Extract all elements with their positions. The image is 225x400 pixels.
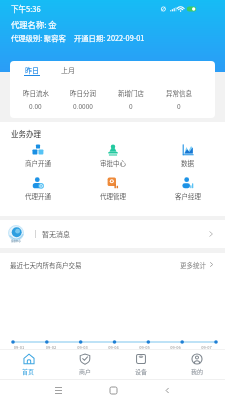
staticText: 09-03 (67, 344, 98, 350)
staticText: 0 (177, 101, 181, 110)
staticText: 09-02 (35, 344, 67, 350)
button[interactable]: 数据 (150, 144, 225, 167)
staticText: 商户 (79, 367, 92, 376)
staticText: 首页 (22, 367, 35, 376)
staticText: 开通日期: 2022-09-01 (74, 33, 145, 44)
staticText: 昨日流水 (23, 88, 49, 97)
staticText: 商户开通 (25, 158, 51, 167)
button[interactable]: 更多统计 (180, 260, 215, 269)
staticText: 客户经理 (175, 191, 201, 200)
button[interactable]: 客户经理 (150, 177, 225, 200)
button[interactable]: 首页 (0, 350, 57, 379)
button[interactable]: 审批中心 (75, 144, 150, 167)
staticText: 0.00 (29, 101, 42, 110)
staticText: 新增门店 (118, 88, 144, 97)
staticText: 上月 (61, 65, 75, 75)
staticText: 09-01 (3, 344, 35, 350)
staticText: 设备 (135, 367, 148, 376)
staticText: 代理开通 (25, 191, 51, 200)
button[interactable]: 消息中心 (0, 220, 225, 248)
button[interactable]: 我的 (169, 350, 225, 379)
button[interactable]: 上月 (61, 65, 75, 75)
staticText: 异常信息 (166, 88, 192, 97)
staticText: 更多统计 (180, 260, 206, 269)
staticText: 最近七天内所有商户交易 (10, 260, 82, 269)
button[interactable]: 设备 (113, 350, 169, 379)
button[interactable]: Home (107, 384, 119, 396)
staticText: 09-07 (191, 344, 222, 350)
button[interactable]: Back (161, 384, 173, 396)
staticText: 09-06 (160, 344, 191, 350)
staticText: 暂无消息 (42, 229, 70, 239)
button[interactable]: 代理开通 (0, 177, 75, 200)
staticText: 代理管理 (100, 191, 126, 200)
staticText: 业务办理 (11, 128, 41, 139)
staticText: 09-04 (98, 344, 129, 350)
staticText: 消息中心 (11, 239, 21, 242)
staticText: 下午5:36 (11, 3, 41, 14)
button[interactable]: 代理管理 (75, 177, 150, 200)
staticText: 0.0000 (73, 101, 93, 110)
staticText: 数据 (181, 158, 194, 167)
staticText: 0 (129, 101, 133, 110)
staticText: 代理级别: 聚容客 (11, 33, 66, 44)
staticText: 我的 (191, 367, 204, 376)
staticText: 审批中心 (100, 158, 126, 167)
button[interactable]: 商户开通 (0, 144, 75, 167)
button[interactable]: 商户 (57, 350, 113, 379)
button[interactable]: 昨日 (24, 65, 40, 76)
staticText: 代理名称: 金 (11, 18, 57, 30)
button[interactable]: Recent apps (52, 384, 64, 396)
staticText: 09-05 (129, 344, 160, 350)
staticText: 昨日分润 (70, 88, 96, 97)
staticText: 昨日 (25, 65, 39, 75)
